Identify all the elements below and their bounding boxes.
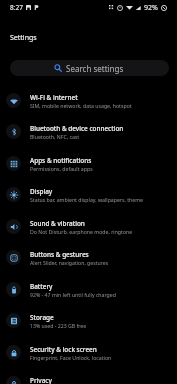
staticText: Do Not Disturb, earphone mode, ringtone — [30, 228, 133, 235]
staticText: Wi-Fi & internet — [30, 93, 78, 102]
staticText: Fingerprint, Face Unlock, location — [30, 354, 112, 361]
staticText: Alert Slider, navigation, gestures — [30, 259, 109, 266]
staticText: 92% - 47 min left until fully charged — [30, 291, 116, 298]
button[interactable]: Battery — [0, 274, 177, 306]
button[interactable]: Storage — [0, 305, 177, 337]
staticText: 8:27 — [10, 3, 23, 12]
staticText: SIM, mobile network, data usage, hotspot — [30, 102, 132, 109]
button[interactable]: Display — [0, 179, 177, 211]
staticText: Battery — [30, 282, 53, 291]
staticText: Security & lock screen — [30, 345, 97, 354]
button[interactable]: Privacy — [0, 368, 177, 384]
staticText: Buttons & gestures — [30, 250, 89, 259]
button[interactable]: Apps & notifications — [0, 148, 177, 180]
staticText: Bluetooth & device connection — [30, 124, 124, 133]
staticText: 92% — [144, 3, 158, 13]
button[interactable]: Wi-Fi & internet — [0, 85, 177, 117]
staticText: Storage — [30, 313, 54, 322]
staticText: Status bar, ambient display, wallpapers,… — [30, 196, 143, 203]
staticText: Permissions, default apps — [30, 165, 93, 172]
staticText: Privacy — [30, 376, 52, 384]
staticText: Display — [30, 187, 53, 196]
staticText: Search settings — [66, 63, 124, 74]
staticText: Settings — [10, 33, 37, 43]
button[interactable]: Search settings — [10, 60, 169, 76]
staticText: 13% used - 223 GB free — [30, 322, 87, 329]
button[interactable]: Security & lock screen — [0, 337, 177, 369]
staticText: Bluetooth, NFC, cast — [30, 133, 80, 140]
staticText: Sound & vibration — [30, 219, 85, 228]
button[interactable]: Buttons & gestures — [0, 242, 177, 274]
button[interactable]: Sound & vibration — [0, 211, 177, 243]
staticText: Apps & notifications — [30, 156, 92, 165]
button[interactable]: Bluetooth & device connection — [0, 116, 177, 148]
